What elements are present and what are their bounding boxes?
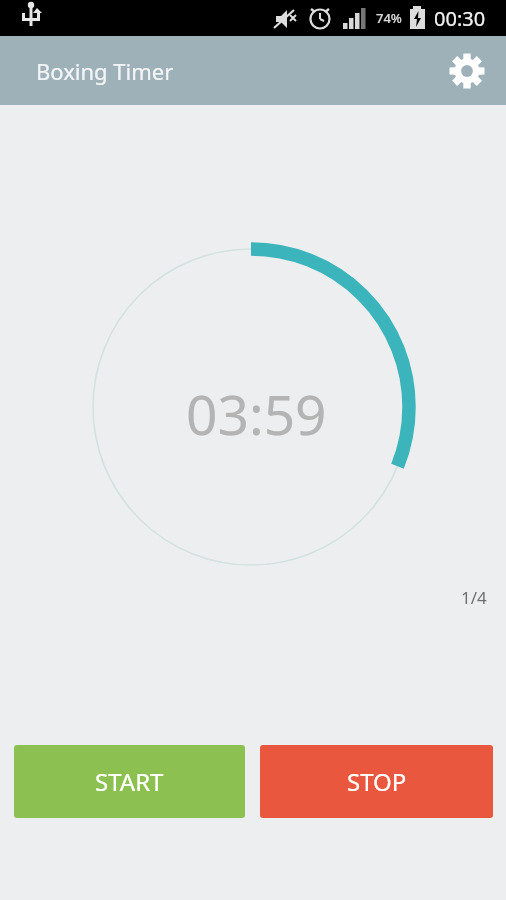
staticText: 00:30 [434, 5, 486, 32]
staticText: 74% [376, 9, 402, 27]
staticText: START [95, 765, 164, 798]
staticText: 1/4 [461, 586, 487, 609]
button[interactable]: START [14, 745, 245, 818]
staticText: 03:59 [186, 376, 327, 451]
staticText: STOP [347, 765, 407, 798]
staticText: Boxing Timer [36, 56, 174, 86]
button[interactable]: STOP [260, 745, 493, 818]
button[interactable]: Settings [439, 43, 495, 99]
